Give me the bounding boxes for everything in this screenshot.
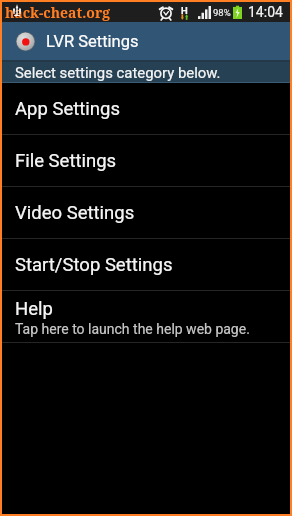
button[interactable]: Video Settings — [2, 187, 290, 238]
staticText: Select settings category below. — [15, 64, 221, 81]
other: Alarm set — [160, 5, 172, 20]
button[interactable]: App Settings — [2, 83, 290, 134]
other: HSPA data — [180, 5, 189, 20]
button[interactable]: LVR Settings — [2, 22, 290, 60]
staticText: LVR Settings — [46, 32, 139, 51]
staticText: 14:04 — [248, 4, 283, 20]
staticText: 98% — [213, 7, 231, 18]
staticText: Help — [15, 298, 53, 320]
staticText: App Settings — [15, 98, 120, 120]
staticText: H — [181, 5, 188, 16]
button[interactable]: Help — [2, 291, 290, 342]
staticText: hack-cheat.org — [5, 3, 111, 22]
button[interactable]: File Settings — [2, 135, 290, 186]
button[interactable]: Start/Stop Settings — [2, 239, 290, 290]
staticText: File Settings — [15, 150, 117, 172]
staticText: Start/Stop Settings — [15, 254, 173, 276]
staticText: Tap here to launch the help web page. — [15, 321, 250, 337]
staticText: Video Settings — [15, 202, 135, 224]
